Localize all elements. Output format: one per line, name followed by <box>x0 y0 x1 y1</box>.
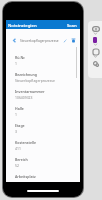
staticText: Steuerkopflagerprozesse <box>15 78 55 83</box>
staticText: Bereich <box>15 157 28 162</box>
staticText: Steuerkopflagerprozesse <box>20 38 61 42</box>
button[interactable]: Bezeichnung <box>15 72 76 89</box>
staticText: Etage <box>15 123 25 128</box>
staticText: 52 <box>15 163 19 168</box>
staticText: Rü.Nr. <box>15 55 26 60</box>
staticText: Inventarnummer <box>15 89 45 94</box>
staticText: 106409323 <box>15 95 33 100</box>
button[interactable]: Kostenstelle <box>15 140 76 157</box>
button[interactable]: Layout <box>92 48 99 55</box>
button[interactable]: Run configuration <box>93 37 97 43</box>
button[interactable]: Device <box>91 25 100 32</box>
button[interactable]: Scan <box>66 21 78 29</box>
staticText: Arbeitsplatz <box>15 174 36 179</box>
button[interactable]: Bereich <box>15 157 76 174</box>
button[interactable]: Inventarnummer <box>15 89 76 106</box>
staticText: Kostenstelle <box>15 140 37 145</box>
staticText: 1 <box>15 61 17 66</box>
button[interactable]: Rü.Nr. <box>15 55 76 72</box>
button[interactable]: Back <box>10 36 18 44</box>
staticText: 411 <box>15 146 21 151</box>
button[interactable]: More tools <box>92 60 99 67</box>
button[interactable]: Arbeitsplatz <box>15 174 76 191</box>
staticText: Halle <box>15 106 24 111</box>
staticText: Notstrategien <box>8 22 37 28</box>
button[interactable]: Etage <box>15 123 76 140</box>
staticText: Bezeichnung <box>15 72 37 77</box>
staticText: Scan <box>67 22 77 28</box>
button[interactable]: Edit <box>61 36 69 44</box>
staticText: 1 <box>15 112 17 117</box>
staticText: 3 <box>15 129 17 134</box>
button[interactable]: Halle <box>15 106 76 123</box>
button[interactable]: Delete <box>69 36 77 44</box>
